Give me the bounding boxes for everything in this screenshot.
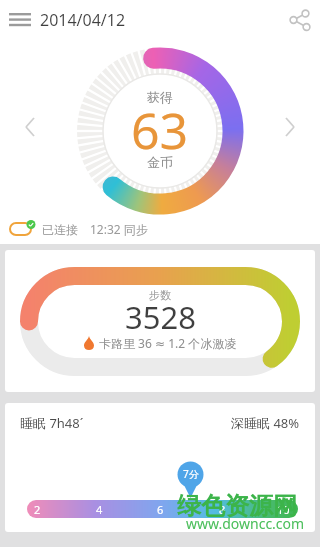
staticText: 深睡眠 48% [231,414,300,432]
button[interactable] [18,115,42,139]
staticText: 12:32 同步 [90,221,148,237]
staticText: 获得 [147,89,173,105]
button[interactable] [278,115,302,139]
staticText: 7分 [183,467,199,481]
button[interactable] [0,0,40,40]
staticText: 睡眠 7h48´ [20,414,84,432]
staticText: www.downcc.com [186,514,305,532]
button[interactable]: 已连接 [0,214,320,244]
staticText: 8 [219,502,226,517]
staticText: 卡路里 36 ≈ 1.2 个冰激凌 [99,335,237,351]
staticText: 3528 [125,296,196,338]
staticText: 步数 [149,288,171,302]
button[interactable] [280,0,320,40]
staticText: 已连接 [42,222,78,237]
button[interactable]: 睡眠 7h48´ [5,403,315,532]
staticText: 6 [157,502,164,517]
staticText: 金币 [147,154,173,170]
staticText: 2 [34,502,41,517]
button[interactable]: 步数 [5,250,315,392]
staticText: 10 [277,502,290,517]
staticText: 2014/04/12 [40,9,126,31]
staticText: 4 [96,502,103,517]
staticText: 63 [131,96,189,164]
staticText: 绿色资源网 [177,491,297,521]
